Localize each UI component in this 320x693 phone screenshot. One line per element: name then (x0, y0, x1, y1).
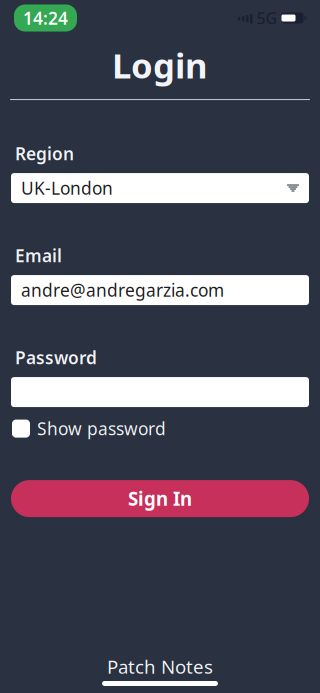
button[interactable]: Show password (0, 417, 320, 440)
staticText: Patch Notes (107, 654, 213, 679)
staticText: 5G (256, 7, 277, 29)
staticText: Email (15, 244, 62, 267)
staticText: UK-London (21, 176, 113, 199)
staticText: andre@andregarzia.com (21, 279, 224, 302)
staticText: Password (15, 346, 97, 369)
button[interactable]: Patch Notes (107, 654, 213, 679)
button[interactable]: UK-London (0, 173, 320, 203)
staticText: Region (15, 142, 74, 165)
staticText: Sign In (128, 486, 192, 511)
button[interactable]: Sign In (0, 480, 320, 517)
staticText: Login (112, 42, 208, 88)
staticText: 14:24 (23, 6, 68, 29)
button[interactable] (0, 377, 320, 407)
button[interactable]: andre@andregarzia.com (0, 275, 320, 305)
staticText: Show password (37, 417, 166, 440)
